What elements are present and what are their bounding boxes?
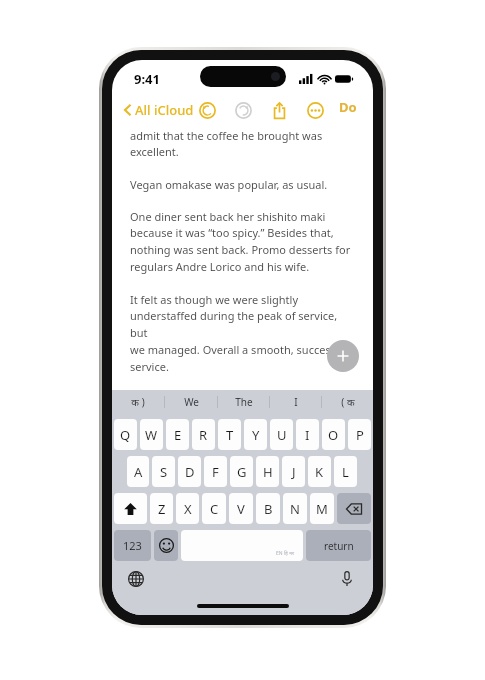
button[interactable]: R bbox=[192, 419, 215, 450]
staticText: return bbox=[324, 539, 354, 553]
button[interactable]: All iCloud bbox=[122, 99, 196, 121]
staticText: A bbox=[134, 463, 143, 481]
button[interactable]: Q bbox=[114, 419, 137, 450]
button[interactable]: M bbox=[310, 493, 334, 524]
button[interactable]: Change keyboard bbox=[124, 567, 148, 591]
staticText: Q bbox=[120, 426, 131, 444]
button[interactable]: V bbox=[229, 493, 253, 524]
staticText: N bbox=[290, 500, 300, 518]
staticText: 9:41 bbox=[134, 70, 160, 88]
staticText: M bbox=[316, 500, 328, 518]
button[interactable]: A bbox=[127, 456, 149, 487]
button[interactable]: N bbox=[283, 493, 307, 524]
staticText: X bbox=[184, 500, 192, 518]
staticText: L bbox=[342, 463, 349, 481]
staticText: We bbox=[184, 395, 199, 409]
staticText: Z bbox=[158, 500, 166, 518]
button[interactable]: Undo bbox=[196, 99, 218, 121]
staticText: Y bbox=[252, 426, 260, 444]
button[interactable]: S bbox=[152, 456, 175, 487]
button[interactable]: More bbox=[304, 99, 326, 121]
button[interactable]: X bbox=[176, 493, 199, 524]
staticText: W bbox=[145, 426, 158, 444]
button[interactable]: K bbox=[308, 456, 331, 487]
staticText: P bbox=[356, 426, 364, 444]
staticText: H bbox=[263, 463, 273, 481]
button[interactable]: C bbox=[202, 493, 226, 524]
button[interactable]: Y bbox=[244, 419, 267, 450]
staticText: D bbox=[185, 463, 195, 481]
button[interactable]: I bbox=[296, 419, 319, 450]
staticText: O bbox=[328, 426, 339, 444]
button[interactable]: J bbox=[282, 456, 305, 487]
button[interactable]: We bbox=[165, 390, 217, 414]
staticText: I bbox=[305, 426, 310, 444]
staticText: ( क bbox=[341, 395, 355, 409]
staticText: क ) bbox=[131, 395, 145, 409]
staticText: F bbox=[212, 463, 219, 481]
button[interactable]: F bbox=[204, 456, 227, 487]
button[interactable]: The bbox=[218, 390, 269, 414]
button[interactable]: Share bbox=[268, 99, 290, 121]
staticText: The bbox=[235, 395, 253, 409]
staticText: C bbox=[210, 500, 219, 518]
button[interactable]: Backspace bbox=[337, 493, 371, 524]
button[interactable]: Add attachment bbox=[327, 340, 359, 372]
button[interactable]: B bbox=[256, 493, 280, 524]
staticText: V bbox=[237, 500, 245, 518]
button[interactable]: Dictate bbox=[335, 567, 359, 591]
staticText: S bbox=[160, 463, 168, 481]
staticText: EN हि मर bbox=[276, 550, 295, 557]
staticText: I bbox=[294, 395, 298, 409]
staticText: Vegan omakase was popular, as usual. bbox=[130, 177, 328, 192]
button[interactable]: क ) bbox=[112, 390, 164, 414]
button[interactable]: W bbox=[140, 419, 163, 450]
button[interactable]: Z bbox=[150, 493, 173, 524]
button[interactable]: T bbox=[218, 419, 241, 450]
staticText: R bbox=[199, 426, 208, 444]
staticText: K bbox=[315, 463, 324, 481]
button[interactable]: ( क bbox=[322, 390, 373, 414]
button[interactable]: D bbox=[178, 456, 201, 487]
button[interactable]: Done bbox=[336, 96, 363, 124]
button[interactable]: P bbox=[348, 419, 371, 450]
staticText: U bbox=[277, 426, 287, 444]
button[interactable]: 123 bbox=[114, 530, 151, 561]
button[interactable]: return bbox=[306, 530, 371, 561]
staticText: G bbox=[237, 463, 247, 481]
staticText: It felt as though we were slightly under… bbox=[130, 292, 355, 375]
staticText: E bbox=[174, 426, 182, 444]
button[interactable]: U bbox=[270, 419, 293, 450]
button[interactable]: Emoji bbox=[154, 530, 178, 561]
button[interactable]: Space bbox=[181, 530, 303, 561]
staticText: T bbox=[226, 426, 234, 444]
staticText: 123 bbox=[123, 538, 142, 553]
staticText: B bbox=[264, 500, 273, 518]
button[interactable]: O bbox=[322, 419, 345, 450]
staticText: J bbox=[292, 463, 296, 481]
button[interactable]: I bbox=[270, 390, 321, 414]
staticText: All iCloud bbox=[135, 101, 194, 119]
button[interactable]: G bbox=[230, 456, 253, 487]
button[interactable]: E bbox=[166, 419, 189, 450]
button[interactable]: Shift bbox=[114, 493, 147, 524]
button[interactable]: L bbox=[334, 456, 357, 487]
button[interactable]: H bbox=[256, 456, 279, 487]
staticText: Done bbox=[339, 98, 360, 122]
staticText: One diner sent back her shishito maki be… bbox=[130, 209, 351, 275]
button[interactable]: Redo bbox=[232, 99, 254, 121]
staticText: admit that the coffee he brought was exc… bbox=[130, 128, 323, 160]
